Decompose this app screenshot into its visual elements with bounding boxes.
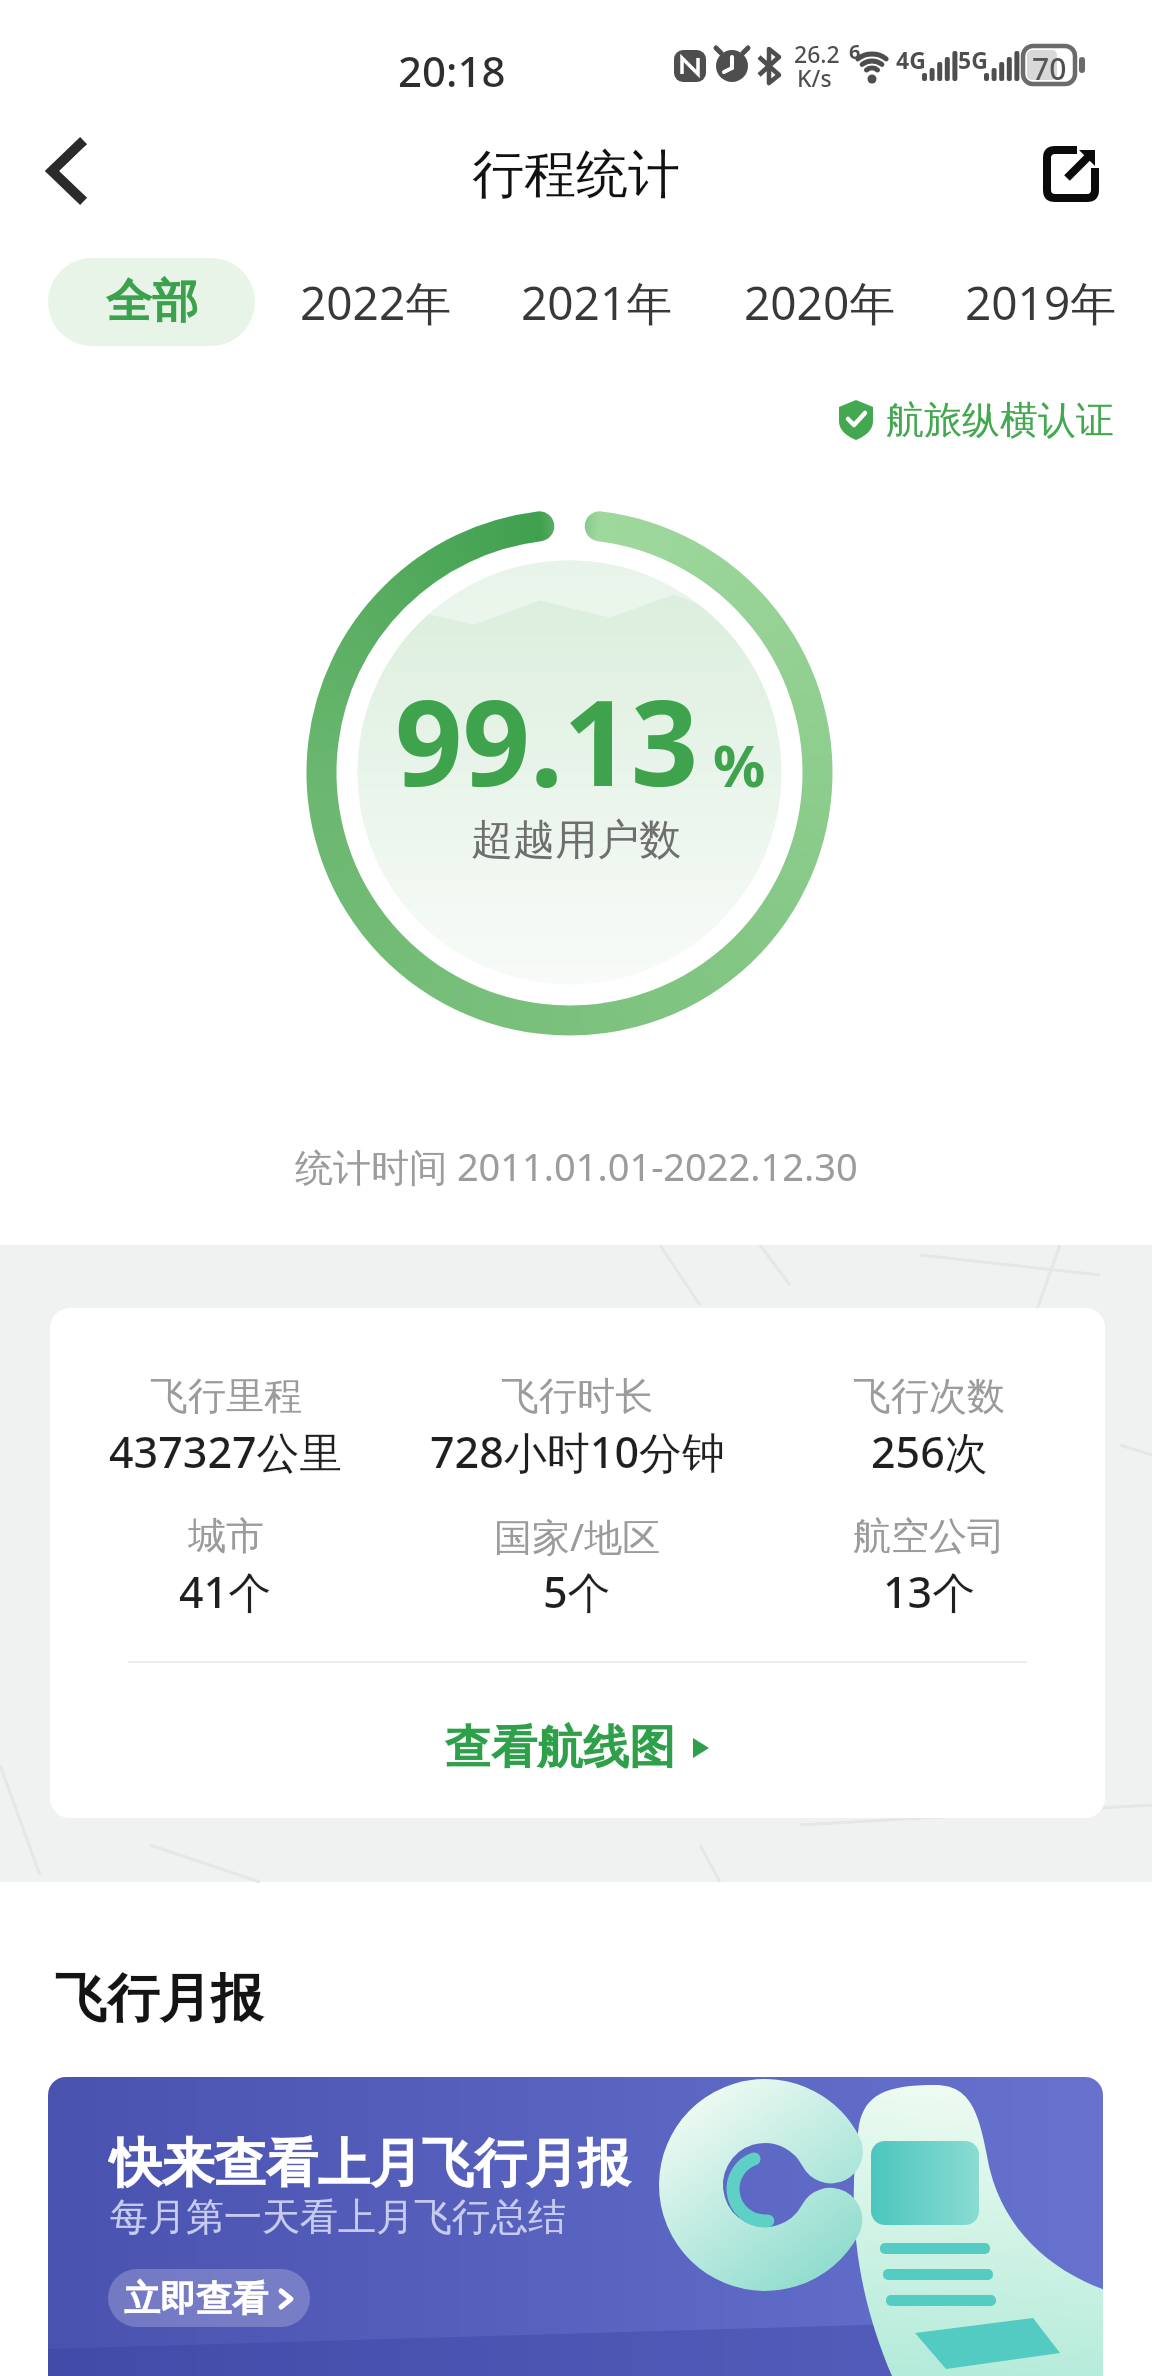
button[interactable] [36,140,100,204]
button[interactable]: 快来查看上月飞行月报 [48,2077,1103,2376]
staticText: 5G [958,44,988,75]
staticText: 超越用户数 [471,814,681,867]
staticText: 飞行月报 [55,1966,263,2032]
staticText: 行程统计 [472,142,680,208]
staticText: 437327公里 [109,1422,343,1479]
button[interactable]: 2019年 [941,258,1141,346]
staticText: 6 [849,38,861,65]
staticText: K/s [797,62,832,93]
staticText: 查看航线图 [445,1719,675,1777]
staticText: 70 [1032,48,1067,89]
staticText: 全部 [106,273,198,331]
staticText: 26.2 [794,38,840,69]
staticText: 256次 [871,1422,988,1479]
staticText: 立即查看 [124,2276,268,2321]
button[interactable] [1036,139,1106,209]
staticText: 国家/地区 [494,1510,661,1562]
staticText: % [713,725,766,804]
staticText: 统计时间 2011.01.01-2022.12.30 [295,1140,858,1192]
staticText: 2019年 [965,271,1117,334]
staticText: 飞行里程 [150,1372,302,1420]
staticText: 每月第一天看上月飞行总结 [110,2193,566,2241]
staticText: 飞行时长 [501,1372,653,1420]
staticText: 13个 [883,1562,976,1619]
staticText: 航旅纵横认证 [886,396,1114,444]
button[interactable]: 2022年 [276,258,476,346]
button[interactable]: 立即查看 [108,2269,310,2327]
staticText: 航空公司 [853,1512,1005,1560]
staticText: 快来查看上月飞行月报 [110,2131,630,2197]
staticText: 728小时10分钟 [430,1422,725,1479]
button[interactable]: 2021年 [497,258,697,346]
staticText: 41个 [179,1562,272,1619]
staticText: 2022年 [300,271,452,334]
staticText: 飞行次数 [853,1372,1005,1420]
staticText: 城市 [188,1512,264,1560]
staticText: 5个 [543,1562,611,1619]
staticText: 4G [896,44,926,75]
button[interactable]: 查看航线图 [50,1716,1105,1780]
staticText: 2021年 [521,271,673,334]
staticText: 99.13 [395,660,699,810]
button[interactable]: 全部 [48,258,255,346]
staticText: 20:18 [398,42,506,99]
button[interactable]: 2020年 [720,258,920,346]
staticText: 2020年 [744,271,896,334]
